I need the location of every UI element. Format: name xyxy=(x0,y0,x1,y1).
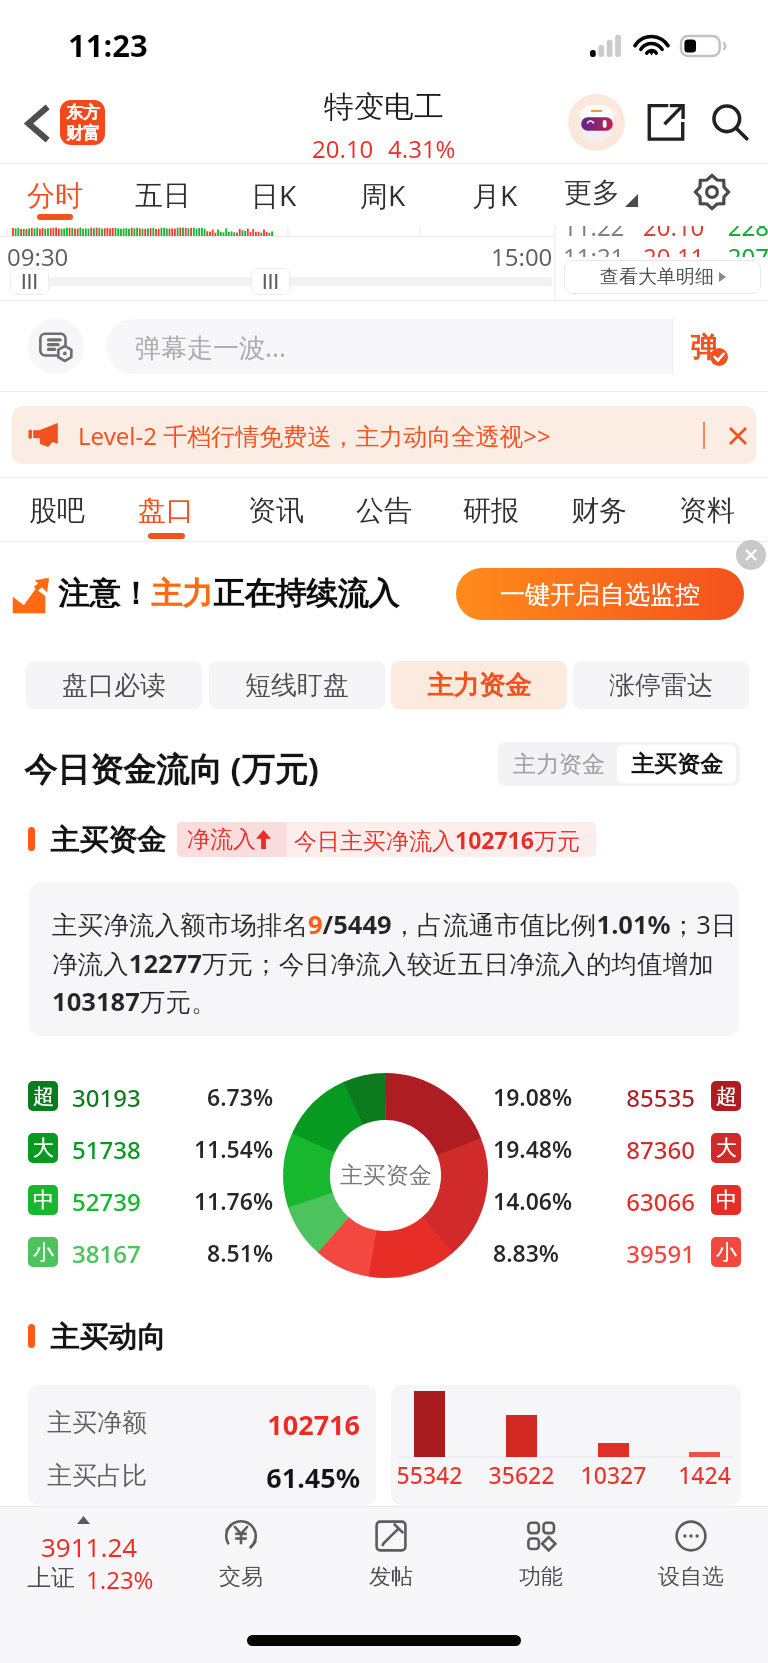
button[interactable]: 日K xyxy=(220,164,328,228)
button[interactable]: Share xyxy=(638,94,694,150)
staticText: 日K xyxy=(251,176,297,214)
staticText: 8.83% xyxy=(493,1237,559,1267)
staticText: 1424 xyxy=(666,1459,741,1490)
staticText: 小 xyxy=(33,1239,54,1265)
button[interactable]: 查看大单明细 xyxy=(564,260,761,294)
button[interactable]: 公告 xyxy=(331,477,437,541)
staticText: 主买资金 xyxy=(631,750,723,779)
button[interactable]: 3911.24 xyxy=(0,1506,190,1663)
staticText: 4.31% xyxy=(388,132,456,165)
staticText: 52739 xyxy=(72,1185,141,1215)
staticText: 38167 xyxy=(72,1237,141,1267)
staticText: 中 xyxy=(33,1187,54,1213)
button[interactable]: 主力资金 xyxy=(501,742,617,786)
staticText: 今日资金流向 (万元) xyxy=(24,746,319,791)
button[interactable]: Search xyxy=(702,94,758,150)
staticText: 一键开启自选监控 xyxy=(500,579,700,610)
staticText: 228 xyxy=(723,226,768,243)
staticText: 11.76% xyxy=(153,1185,273,1215)
staticText: 主买动向 xyxy=(50,1319,166,1356)
staticText: 主买占比 xyxy=(47,1460,147,1491)
staticText: 财务 xyxy=(571,493,627,528)
staticText: 19.08% xyxy=(493,1081,573,1111)
staticText: 11.54% xyxy=(153,1133,273,1163)
button[interactable]: 一键开启自选监控 xyxy=(456,568,744,620)
staticText: 09:30 xyxy=(7,240,69,273)
button[interactable]: 资料 xyxy=(654,477,760,541)
staticText: 11:21 xyxy=(563,240,643,273)
button[interactable]: 股吧 xyxy=(4,477,110,541)
staticText: 特变电工 xyxy=(324,88,444,126)
staticText: 19.48% xyxy=(493,1133,573,1163)
button[interactable]: 盘口 xyxy=(113,477,219,541)
button[interactable]: 交易 xyxy=(191,1506,291,1663)
button[interactable]: 财务 xyxy=(546,477,652,541)
button[interactable]: Close banner xyxy=(721,419,754,452)
button[interactable]: 设自选 xyxy=(641,1506,741,1663)
staticText: 资料 xyxy=(679,493,735,528)
staticText: 6.73% xyxy=(153,1081,273,1111)
button[interactable]: Barrage settings xyxy=(28,318,84,374)
staticText: 股吧 xyxy=(29,493,85,528)
staticText: 五日 xyxy=(135,178,191,213)
button[interactable]: Resize chart range xyxy=(251,268,290,295)
button[interactable]: 短线盯盘 xyxy=(209,661,385,709)
staticText: 主力资金 xyxy=(513,750,605,779)
staticText: 公告 xyxy=(356,493,412,528)
staticText: 207 xyxy=(723,240,768,273)
staticText: 10327 xyxy=(575,1459,652,1490)
staticText: 涨停雷达 xyxy=(609,669,713,702)
staticText: 主买净额 xyxy=(47,1407,147,1438)
staticText: 主买资金 xyxy=(340,1161,432,1190)
staticText: 20.10 xyxy=(312,132,374,165)
staticText: 弹 xyxy=(690,330,718,364)
button[interactable]: AI assistant xyxy=(568,94,625,151)
button[interactable]: 研报 xyxy=(438,477,544,541)
staticText: 盘口必读 xyxy=(62,669,166,702)
button[interactable]: 功能 xyxy=(491,1506,591,1663)
staticText: 注意！主力正在持续流入 xyxy=(58,574,399,613)
staticText: 87360 xyxy=(602,1133,695,1163)
staticText: 弹幕走一波... xyxy=(135,329,286,365)
button[interactable]: 五日 xyxy=(109,164,217,228)
staticText: 8.51% xyxy=(153,1237,273,1267)
button[interactable]: Resize chart range xyxy=(10,268,49,295)
staticText: 55342 xyxy=(391,1459,468,1490)
staticText: 今日主买净流入102716万元 xyxy=(294,824,580,855)
button[interactable]: Back xyxy=(8,95,64,151)
staticText: 15:00 xyxy=(491,240,553,273)
button[interactable]: 主力资金 xyxy=(391,661,567,709)
staticText: 39591 xyxy=(602,1237,695,1267)
button[interactable]: 发帖 xyxy=(341,1506,441,1663)
staticText: 1.23% xyxy=(86,1563,154,1596)
button[interactable]: 资讯 xyxy=(223,477,329,541)
staticText: 63066 xyxy=(602,1185,695,1215)
staticText: 20.11 xyxy=(643,240,723,273)
button[interactable]: 涨停雷达 xyxy=(573,661,749,709)
staticText: 大 xyxy=(33,1135,54,1161)
staticText: 11:23 xyxy=(68,24,148,66)
staticText: 85535 xyxy=(602,1081,695,1111)
staticText: 盘口 xyxy=(138,493,194,528)
staticText: 净流入 xyxy=(187,825,256,854)
staticText: 主买净流入额市场排名9/5449，占流通市值比例1.01%；3日净流入12277… xyxy=(52,907,739,1019)
button[interactable]: 盘口必读 xyxy=(26,661,202,709)
staticText: 功能 xyxy=(519,1563,563,1591)
staticText: 51738 xyxy=(72,1133,141,1163)
button[interactable]: East Money logo xyxy=(60,100,105,145)
button[interactable]: Dismiss promo xyxy=(736,540,766,570)
staticText: 3911.24 xyxy=(41,1529,138,1564)
staticText: 中 xyxy=(716,1187,737,1213)
button[interactable]: 周K xyxy=(329,164,437,228)
button[interactable]: Chart settings xyxy=(676,164,748,228)
staticText: 主力资金 xyxy=(427,669,531,702)
button[interactable]: 分时 xyxy=(1,164,109,228)
button[interactable]: 更多 xyxy=(545,164,657,228)
button[interactable]: 月K xyxy=(441,164,549,228)
staticText: 月K xyxy=(472,176,518,214)
staticText: 设自选 xyxy=(658,1563,724,1591)
button[interactable]: Level-2 千档行情免费送，主力动向全透视>> xyxy=(12,406,756,464)
button[interactable]: Send barrage xyxy=(673,319,743,374)
button[interactable]: 主买资金 xyxy=(617,745,736,783)
staticText: 发帖 xyxy=(369,1563,413,1591)
